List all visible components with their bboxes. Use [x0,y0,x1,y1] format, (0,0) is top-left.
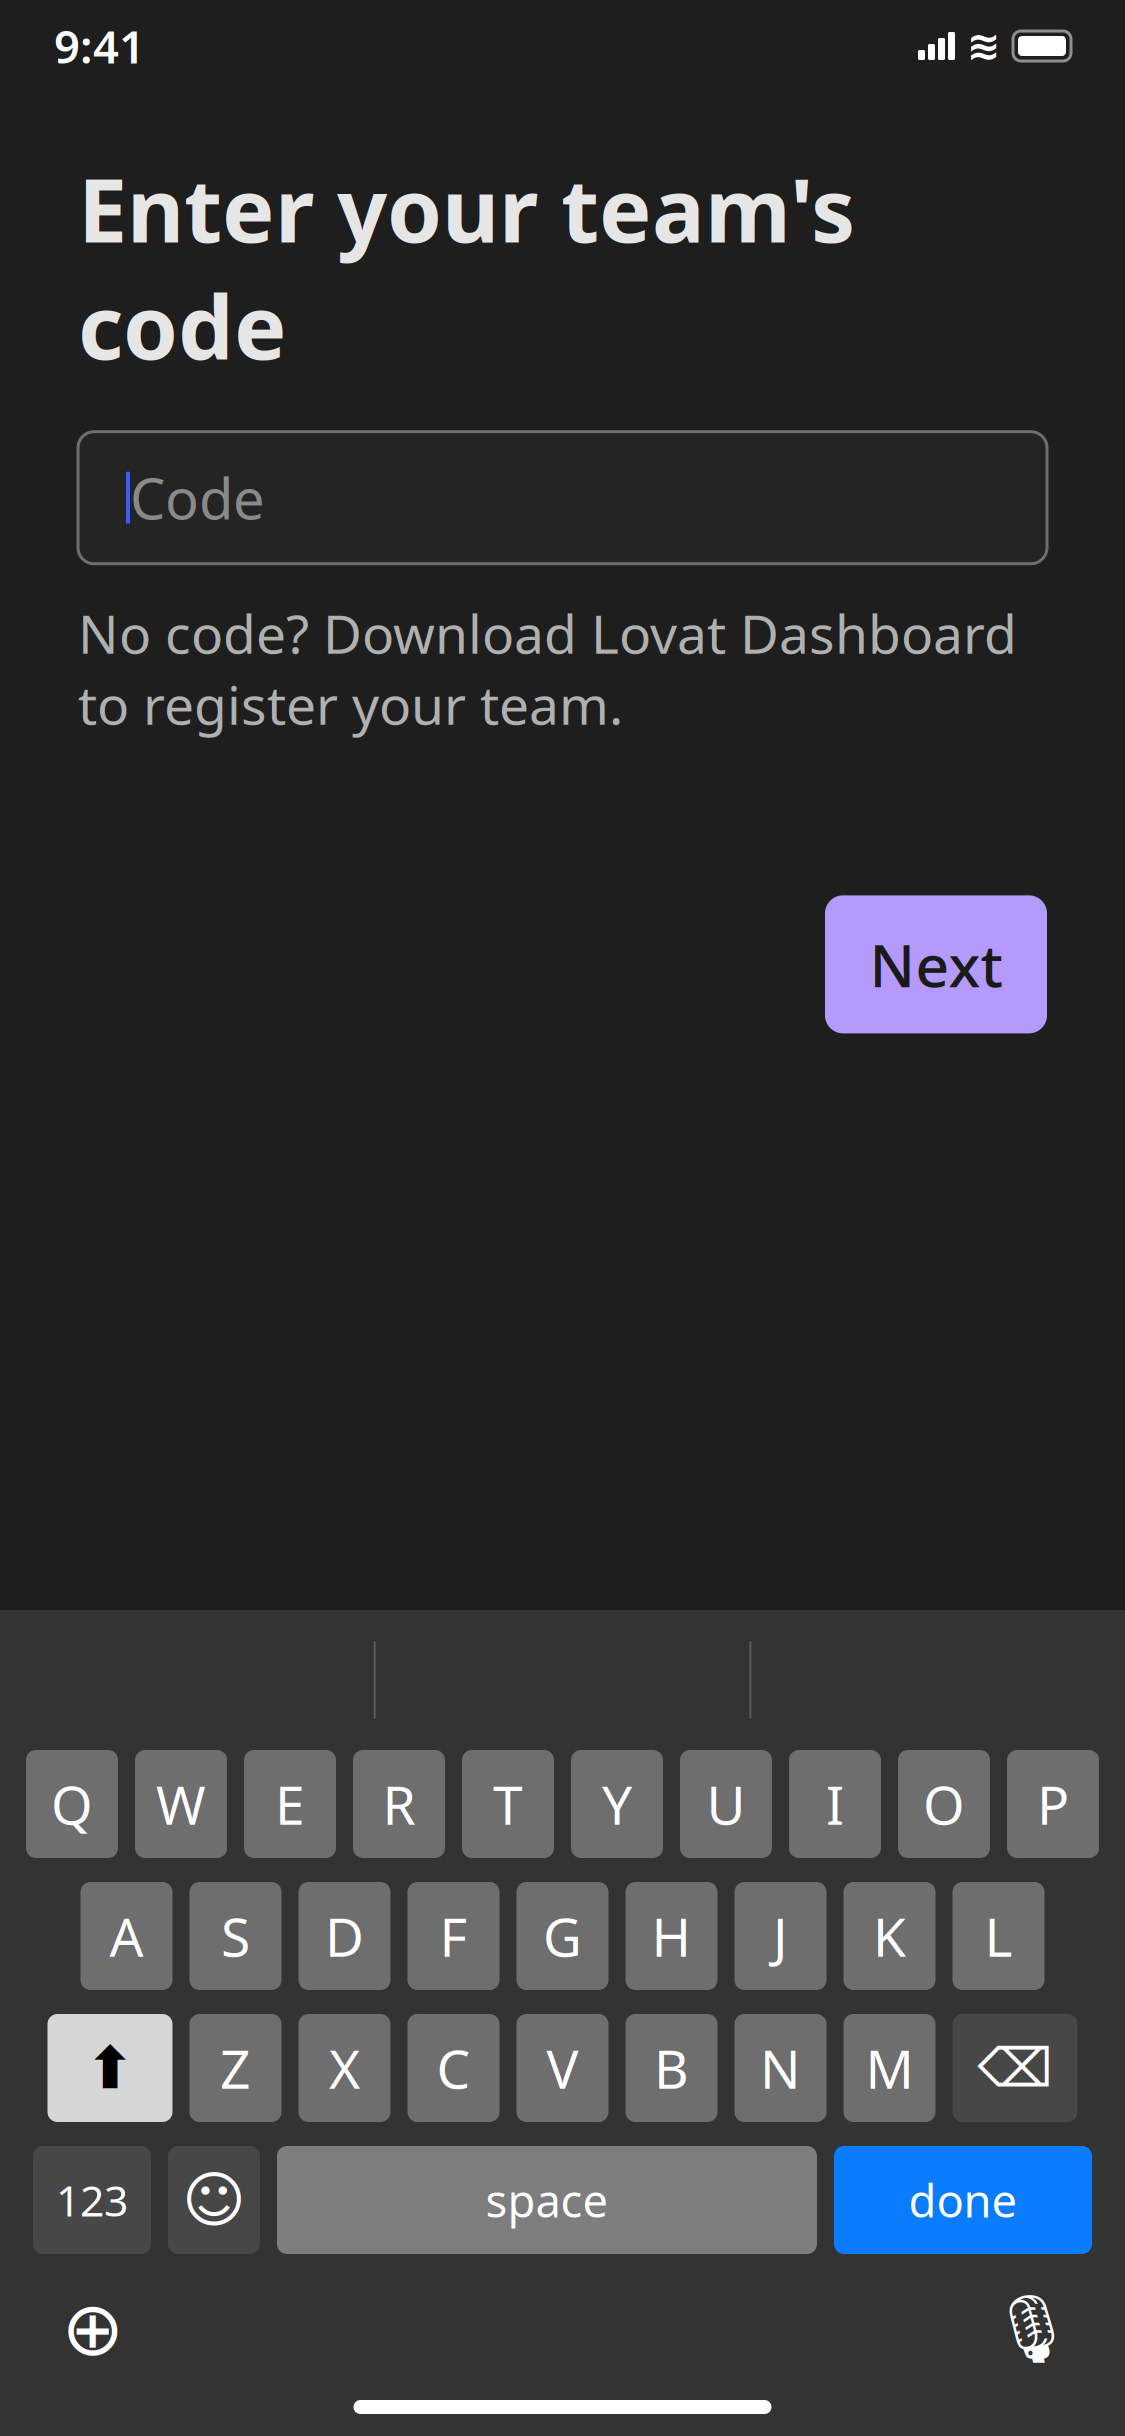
staticText: ⌫ [977,2038,1052,2098]
button[interactable]: L [952,1882,1044,1990]
button[interactable]: Z [189,2014,281,2122]
button[interactable]: Code [78,432,1047,564]
staticText: Q [51,1769,93,1839]
button[interactable]: D [298,1882,390,1990]
button[interactable]: S [189,1882,281,1990]
staticText: No code? Download Lovat Dashboard to reg… [78,598,1017,739]
staticText: ≋ [967,23,1001,69]
staticText: U [706,1769,745,1839]
staticText: ☺ [182,2165,246,2235]
staticText: space [485,2170,608,2230]
staticText: N [760,2033,801,2103]
staticText: done [908,2170,1017,2230]
button[interactable]: Shift [47,2014,172,2122]
staticText: S [221,1901,250,1971]
button[interactable]: Next [825,895,1047,1033]
staticText: O [923,1769,965,1839]
staticText: X [329,2033,360,2103]
staticText: G [543,1901,582,1971]
staticText: 123 [56,2172,128,2228]
staticText: E [275,1769,305,1839]
staticText: A [109,1901,143,1971]
button[interactable]: T [462,1750,554,1858]
button[interactable]: I [789,1750,881,1858]
staticText: Enter your team's code [78,150,855,384]
staticText: T [493,1769,523,1839]
button[interactable]: Y [571,1750,663,1858]
button[interactable]: B [625,2014,717,2122]
staticText: ⊕ [61,2287,124,2371]
button[interactable]: Q [26,1750,118,1858]
staticText: R [382,1769,415,1839]
staticText: F [439,1901,467,1971]
staticText: B [654,2033,689,2103]
button[interactable]: U [680,1750,772,1858]
staticText: K [873,1901,906,1971]
button[interactable]: done [834,2146,1092,2254]
button[interactable]: V [516,2014,608,2122]
staticText: 🎙 [989,2291,1074,2367]
staticText: C [436,2033,470,2103]
staticText: D [325,1901,364,1971]
staticText: Z [220,2033,251,2103]
button[interactable]: F [407,1882,499,1990]
staticText: M [865,2033,913,2103]
button[interactable]: G [516,1882,608,1990]
staticText: J [773,1901,788,1971]
button[interactable]: O [898,1750,990,1858]
button[interactable]: Emoji [168,2146,260,2254]
button[interactable]: Dictation [987,2284,1077,2374]
button[interactable]: P [1007,1750,1099,1858]
staticText: 9:41 [54,16,145,76]
staticText: I [826,1769,844,1839]
staticText: V [546,2033,578,2103]
button[interactable]: J [734,1882,826,1990]
staticText: P [1037,1769,1069,1839]
button[interactable]: Next keyboard [48,2284,138,2374]
button[interactable]: E [244,1750,336,1858]
staticText: H [651,1901,691,1971]
staticText: W [156,1769,206,1839]
button[interactable]: Delete [952,2014,1077,2122]
button[interactable]: H [625,1882,717,1990]
button[interactable]: C [407,2014,499,2122]
button[interactable]: 123 [33,2146,151,2254]
button[interactable]: W [135,1750,227,1858]
staticText: Code [130,460,265,535]
button[interactable]: A [80,1882,172,1990]
button[interactable]: M [843,2014,935,2122]
staticText: ⬆ [85,2035,134,2101]
staticText: Next [869,925,1002,1003]
button[interactable]: N [734,2014,826,2122]
button[interactable]: space [277,2146,817,2254]
button[interactable]: R [353,1750,445,1858]
staticText: Y [602,1769,632,1839]
staticText: L [984,1901,1012,1971]
button[interactable]: X [298,2014,390,2122]
button[interactable]: K [843,1882,935,1990]
